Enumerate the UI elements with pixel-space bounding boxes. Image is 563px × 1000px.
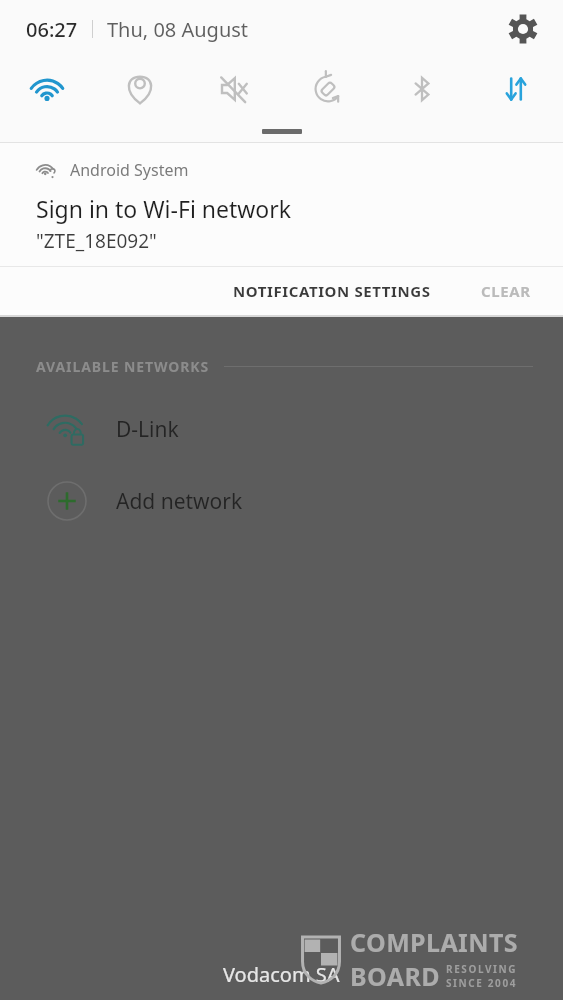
- button[interactable]: D-Link: [0, 400, 563, 458]
- staticText: 06:27: [26, 16, 78, 43]
- button[interactable]: Bluetooth: [375, 58, 469, 120]
- button[interactable]: Mute: [187, 58, 281, 120]
- button[interactable]: Wi-Fi: [0, 58, 93, 120]
- staticText: BOARD: [350, 959, 440, 993]
- staticText: D-Link: [116, 415, 179, 444]
- staticText: CLEAR: [481, 281, 531, 301]
- button[interactable]: Add network: [0, 474, 563, 528]
- button[interactable]: NOTIFICATION SETTINGS: [217, 271, 447, 311]
- staticText: Add network: [116, 487, 243, 516]
- button[interactable]: Location: [93, 58, 187, 120]
- staticText: RESOLVING: [446, 962, 518, 976]
- staticText: Android System: [70, 159, 189, 181]
- button[interactable]: Settings: [497, 3, 549, 55]
- staticText: "ZTE_18E092": [36, 228, 157, 254]
- staticText: Thu, 08 August: [107, 16, 249, 43]
- button[interactable]: Mobile data: [469, 58, 563, 120]
- button[interactable]: Auto rotate: [281, 58, 375, 120]
- staticText: SINCE 2004: [446, 976, 518, 990]
- staticText: Vodacom SA: [223, 961, 340, 988]
- button[interactable]: CLEAR: [465, 271, 547, 311]
- button[interactable]: Android System: [0, 143, 563, 266]
- staticText: Sign in to Wi-Fi network: [36, 193, 292, 224]
- staticText: COMPLAINTS: [350, 925, 518, 959]
- staticText: NOTIFICATION SETTINGS: [233, 281, 431, 301]
- staticText: AVAILABLE NETWORKS: [36, 357, 210, 376]
